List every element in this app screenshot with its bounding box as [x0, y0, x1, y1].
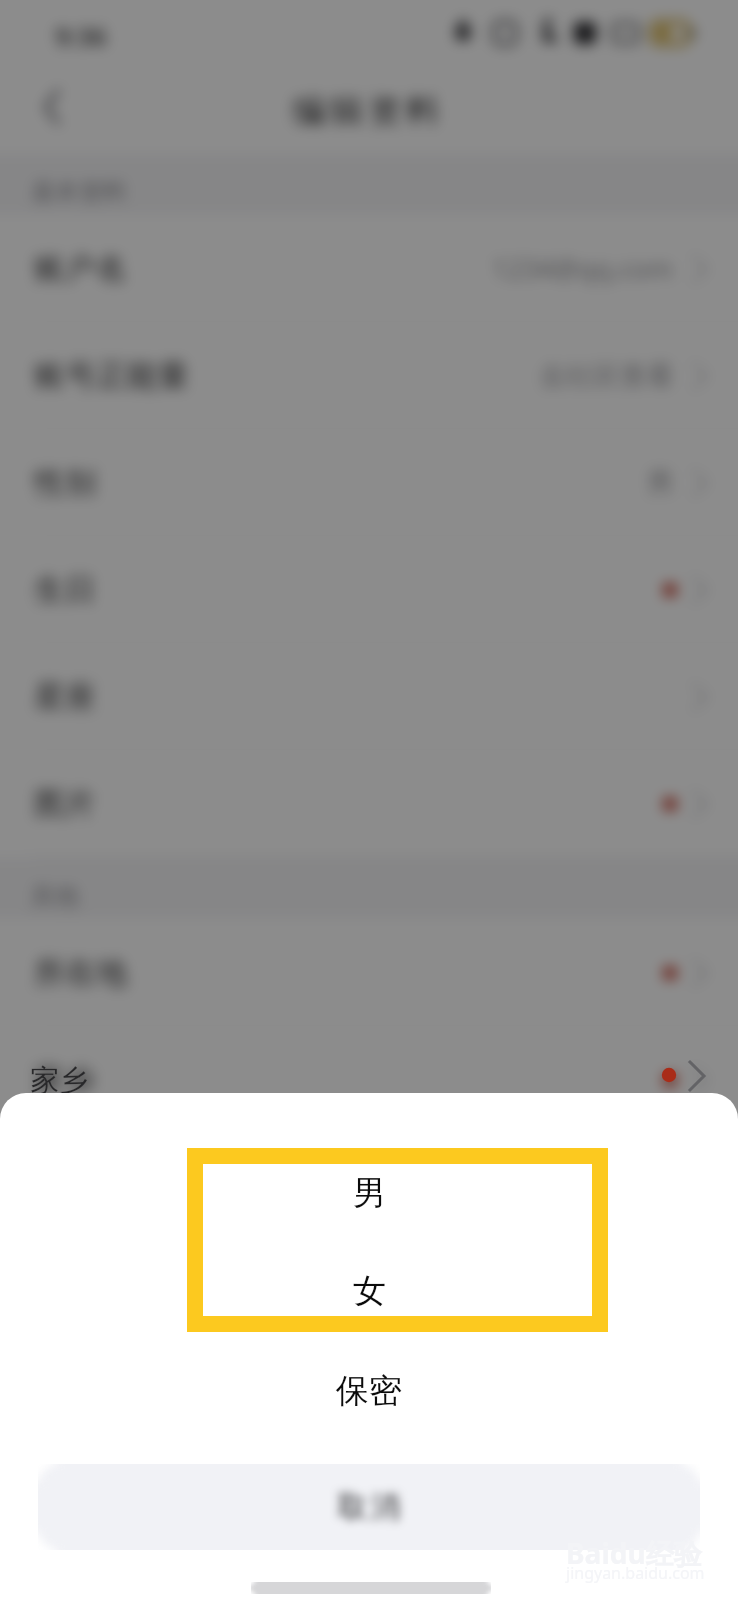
- button[interactable]: 星座: [0, 643, 738, 750]
- staticText: 基本资料: [31, 177, 127, 207]
- staticText: 1234@qq.com: [492, 250, 674, 287]
- button[interactable]: Back: [28, 77, 88, 137]
- staticText: 所在地: [34, 953, 127, 992]
- staticText: 去社区查看: [539, 359, 674, 393]
- staticText: 男: [353, 1172, 386, 1214]
- staticText: 家乡: [30, 1062, 88, 1099]
- button[interactable]: 账号正能量: [0, 322, 738, 429]
- staticText: 账号正能量: [34, 356, 189, 395]
- staticText: 账户名: [34, 249, 127, 288]
- button[interactable]: 账户名: [0, 215, 738, 322]
- button[interactable]: 男: [0, 1150, 738, 1236]
- staticText: 其他: [31, 881, 79, 911]
- button[interactable]: 生日: [0, 536, 738, 643]
- staticText: jingyan.baidu.com: [566, 1562, 705, 1584]
- button[interactable]: 所在地: [0, 919, 738, 1026]
- button[interactable]: 家乡: [0, 1026, 738, 1133]
- staticText: 取消: [336, 1488, 402, 1526]
- button[interactable]: 女: [0, 1248, 738, 1334]
- button[interactable]: 保密: [0, 1348, 738, 1434]
- staticText: 9:36: [55, 18, 107, 53]
- staticText: 星座: [34, 677, 96, 716]
- staticText: 家乡: [34, 1060, 96, 1099]
- staticText: 男: [647, 466, 674, 500]
- staticText: 图片: [34, 784, 96, 823]
- staticText: 性别: [34, 463, 96, 502]
- staticText: 编辑资料: [292, 90, 446, 132]
- button[interactable]: 个性签名: [0, 1133, 738, 1240]
- staticText: Baidu经验: [566, 1534, 702, 1572]
- button[interactable]: 取消: [38, 1464, 700, 1550]
- staticText: 生日: [34, 570, 96, 609]
- staticText: 女: [353, 1270, 386, 1312]
- button[interactable]: 图片: [0, 750, 738, 857]
- staticText: 保密: [336, 1370, 402, 1412]
- button[interactable]: 性别: [0, 429, 738, 536]
